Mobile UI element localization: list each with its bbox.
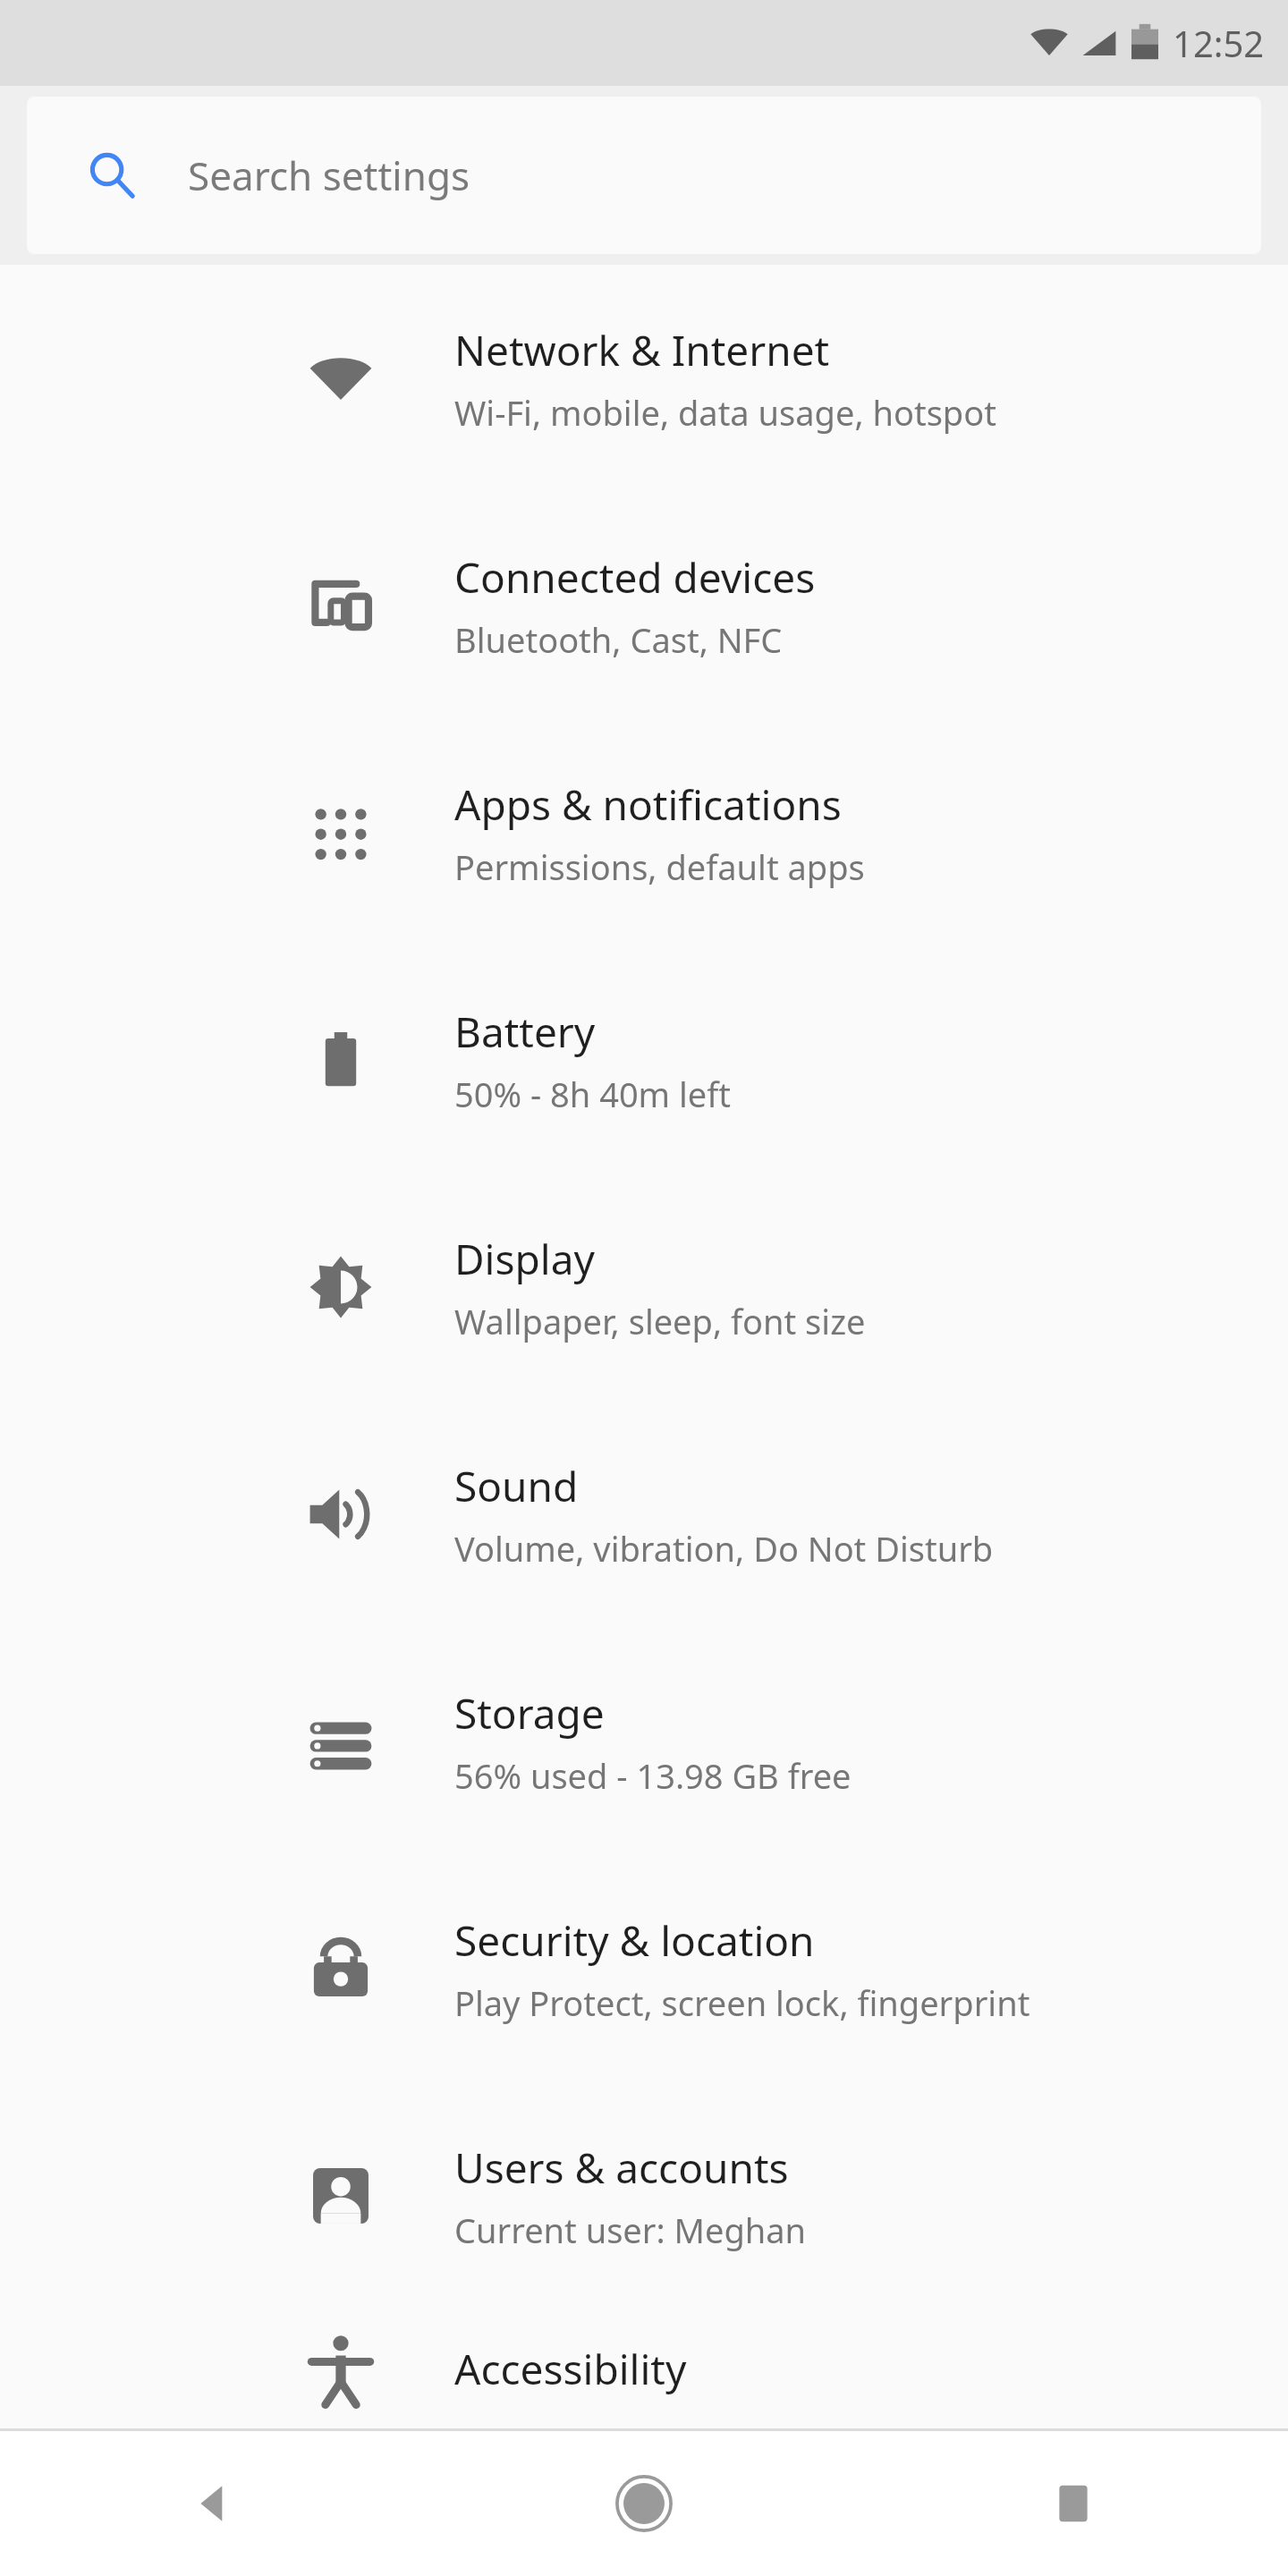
staticText: Wallpaper, sleep, font size xyxy=(454,1298,866,1344)
staticText: 56% used - 13.98 GB free xyxy=(454,1752,852,1799)
button[interactable]: Security & location xyxy=(0,1855,1288,2082)
staticText: Current user: Meghan xyxy=(454,2207,807,2253)
button[interactable]: Network & Internet xyxy=(0,265,1288,492)
button[interactable]: Recent apps xyxy=(859,2431,1288,2576)
staticText: Search settings xyxy=(188,148,470,202)
button[interactable]: Accessibility xyxy=(0,2309,1288,2428)
staticText: Connected devices xyxy=(454,549,816,606)
button[interactable]: Back xyxy=(0,2431,429,2576)
button[interactable]: Connected devices xyxy=(0,492,1288,719)
staticText: Wi-Fi, mobile, data usage, hotspot xyxy=(454,389,996,436)
button[interactable]: Home xyxy=(429,2431,859,2576)
button[interactable]: Users & accounts xyxy=(0,2082,1288,2309)
button[interactable]: Battery xyxy=(0,946,1288,1174)
staticText: Apps & notifications xyxy=(454,776,842,833)
staticText: Display xyxy=(454,1231,595,1287)
button[interactable]: Apps & notifications xyxy=(0,719,1288,946)
staticText: Battery xyxy=(454,1004,596,1060)
staticText: Sound xyxy=(454,1458,579,1514)
staticText: Bluetooth, Cast, NFC xyxy=(454,616,783,663)
staticText: Play Protect, screen lock, fingerprint xyxy=(454,1979,1030,2026)
button[interactable]: Storage xyxy=(0,1628,1288,1855)
button[interactable]: Display xyxy=(0,1174,1288,1401)
staticText: Security & location xyxy=(454,1912,815,1969)
staticText: Permissions, default apps xyxy=(454,843,865,890)
staticText: 50% - 8h 40m left xyxy=(454,1071,732,1117)
staticText: 12:52 xyxy=(1173,19,1265,67)
staticText: Users & accounts xyxy=(454,2140,789,2196)
staticText: Storage xyxy=(454,1685,605,1741)
staticText: Network & Internet xyxy=(454,322,830,378)
button[interactable]: Sound xyxy=(0,1401,1288,1628)
staticText: Volume, vibration, Do Not Disturb xyxy=(454,1525,994,1572)
button[interactable]: Search settings xyxy=(27,97,1261,254)
staticText: Accessibility xyxy=(454,2341,687,2397)
